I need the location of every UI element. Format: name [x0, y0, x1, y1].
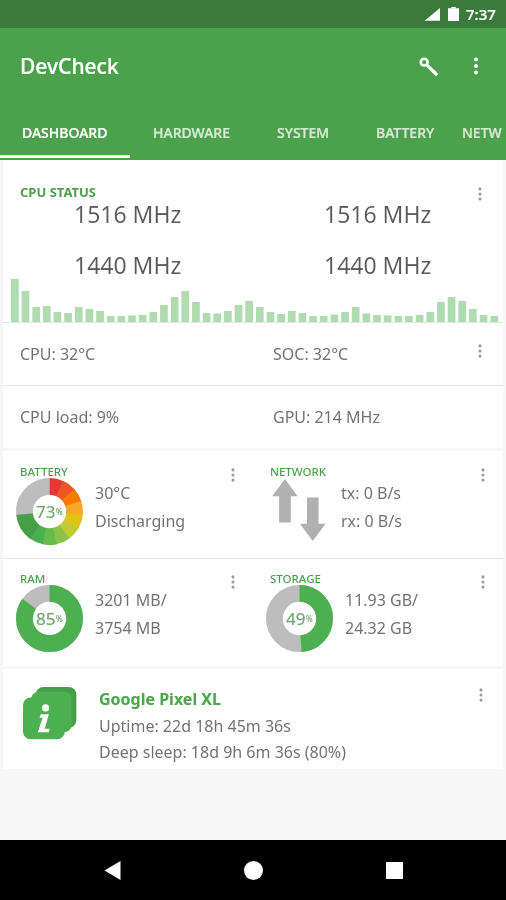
button[interactable]: Home [224, 841, 282, 899]
staticText: DevCheck [20, 52, 119, 81]
button[interactable]: STORAGE [253, 559, 503, 666]
staticText: CPU: 32°C [20, 343, 96, 365]
button[interactable]: SYSTEM [254, 104, 352, 160]
button[interactable]: DASHBOARD [0, 104, 130, 160]
staticText: NETWORK [270, 464, 327, 480]
staticText: CPU STATUS [20, 183, 96, 201]
button[interactable]: CPU: 32°C [3, 323, 503, 385]
button[interactable]: CPU load: 9% [3, 386, 503, 448]
button[interactable]: More options [465, 457, 501, 493]
button[interactable]: More options [215, 564, 251, 600]
button[interactable]: NETW [458, 104, 506, 160]
staticText: Google Pixel XL [99, 688, 221, 710]
button[interactable]: More options [463, 677, 499, 713]
staticText: % [56, 506, 63, 517]
staticText: Deep sleep: 18d 9h 6m 36s (80%) [99, 741, 346, 763]
staticText: Discharging [95, 510, 186, 532]
staticText: tx: 0 B/s [341, 482, 402, 504]
staticText: 73 [36, 500, 56, 523]
button[interactable]: More options [462, 333, 498, 369]
button[interactable]: More options [465, 564, 501, 600]
staticText: SYSTEM [277, 123, 330, 142]
staticText: DASHBOARD [22, 123, 108, 142]
staticText: GPU: 214 MHz [273, 406, 380, 428]
staticText: % [56, 613, 63, 624]
staticText: 30°C [95, 482, 131, 504]
staticText: 85 [36, 607, 56, 630]
staticText: 1516 MHz [74, 198, 182, 229]
staticText: Uptime: 22d 18h 45m 36s [99, 715, 291, 737]
button[interactable]: Recents [365, 841, 423, 899]
button[interactable]: BATTERY [3, 451, 253, 558]
staticText: 1440 MHz [74, 249, 182, 280]
staticText: STORAGE [270, 571, 321, 587]
button[interactable]: More options [452, 42, 500, 90]
button[interactable]: BATTERY [352, 104, 458, 160]
button[interactable]: HARDWARE [130, 104, 254, 160]
staticText: 1440 MHz [324, 249, 432, 280]
staticText: % [306, 613, 313, 624]
staticText: 3201 MB/ [95, 589, 167, 611]
staticText: rx: 0 B/s [341, 510, 402, 532]
button[interactable]: Key [404, 42, 452, 90]
staticText: SOC: 32°C [273, 343, 349, 365]
staticText: 7:37 [466, 4, 496, 24]
button[interactable]: NETWORK [253, 451, 503, 558]
button[interactable]: More options [215, 457, 251, 493]
staticText: RAM [20, 571, 46, 587]
button[interactable]: Back [83, 841, 141, 899]
staticText: NETW [462, 123, 502, 142]
staticText: 3754 MB [95, 617, 161, 639]
staticText: BATTERY [376, 123, 435, 142]
staticText: 24.32 GB [345, 617, 413, 639]
staticText: 11.93 GB/ [345, 589, 419, 611]
button[interactable]: CPU STATUS [3, 160, 503, 322]
staticText: BATTERY [20, 464, 68, 480]
staticText: 49 [286, 607, 306, 630]
button[interactable]: RAM [3, 559, 253, 666]
staticText: HARDWARE [153, 123, 231, 142]
button[interactable]: Google Pixel XL [3, 669, 503, 769]
button[interactable]: More options [462, 176, 498, 212]
staticText: CPU load: 9% [20, 406, 120, 428]
staticText: 1516 MHz [324, 198, 432, 229]
